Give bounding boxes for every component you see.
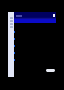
button[interactable]: Menu item [10,26,13,28]
button[interactable]: Menu item [10,20,13,22]
button[interactable]: Action [46,69,55,72]
button[interactable]: Menu item [10,23,13,25]
button[interactable]: Menu item [10,17,13,19]
